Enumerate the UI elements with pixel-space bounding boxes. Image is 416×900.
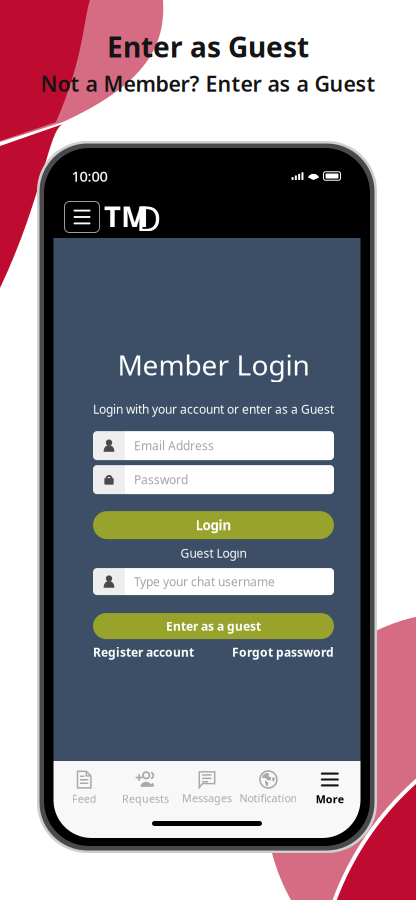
- button[interactable]: Enter as a guest: [93, 613, 334, 639]
- staticText: Feed: [72, 791, 97, 806]
- staticText: More: [316, 792, 344, 806]
- button[interactable]: Feed: [53, 770, 115, 806]
- staticText: Register account: [93, 644, 194, 660]
- staticText: 10:00: [71, 166, 107, 186]
- button[interactable]: Password: [93, 465, 334, 494]
- staticText: Enter as Guest: [107, 28, 309, 65]
- staticText: TM: [104, 196, 149, 235]
- button[interactable]: Menu: [64, 201, 99, 232]
- button[interactable]: Requests: [115, 770, 176, 806]
- button[interactable]: More: [299, 770, 360, 806]
- staticText: Requests: [122, 791, 169, 806]
- button[interactable]: Notification: [238, 771, 299, 805]
- staticText: Member Login: [117, 346, 309, 383]
- staticText: Login with your account or enter as a Gu…: [93, 401, 334, 417]
- staticText: Notification: [239, 791, 297, 805]
- staticText: Type your chat username: [134, 574, 275, 589]
- staticText: D: [136, 195, 161, 241]
- button[interactable]: Login: [93, 511, 334, 539]
- staticText: Not a Member? Enter as a Guest: [40, 69, 375, 97]
- staticText: Guest Login: [180, 545, 246, 561]
- staticText: Enter as a guest: [166, 618, 261, 634]
- button[interactable]: Messages: [176, 771, 238, 805]
- button[interactable]: Forgot password: [232, 644, 334, 660]
- button[interactable]: Register account: [93, 644, 194, 660]
- button[interactable]: Type your chat username: [93, 568, 334, 595]
- staticText: Messages: [182, 791, 232, 805]
- staticText: Password: [134, 472, 188, 488]
- staticText: Email Address: [134, 438, 214, 454]
- button[interactable]: Email Address: [93, 431, 334, 460]
- staticText: Forgot password: [232, 644, 334, 660]
- staticText: Login: [195, 516, 231, 534]
